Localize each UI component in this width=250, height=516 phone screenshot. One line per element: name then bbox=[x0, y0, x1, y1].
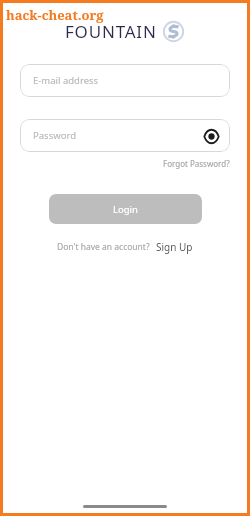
button[interactable]: Password bbox=[20, 119, 230, 152]
staticText: Don't have an account? bbox=[57, 241, 150, 253]
button[interactable]: E-mail address bbox=[20, 64, 230, 97]
staticText: hack-cheat.org bbox=[6, 6, 104, 24]
button[interactable]: Show password bbox=[201, 126, 221, 146]
staticText: Login bbox=[113, 203, 138, 216]
staticText: FOUNTAIN bbox=[65, 20, 157, 43]
button[interactable]: Sign Up bbox=[150, 240, 193, 254]
staticText: E-mail address bbox=[33, 74, 99, 87]
staticText: Password bbox=[33, 129, 76, 142]
button[interactable]: Forgot Password? bbox=[163, 158, 230, 169]
button[interactable]: Login bbox=[49, 194, 202, 224]
staticText: Sign Up bbox=[156, 240, 193, 254]
